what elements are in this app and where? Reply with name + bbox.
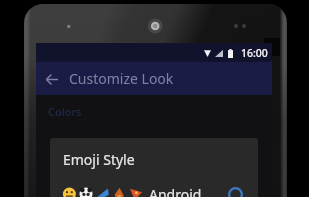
staticText: Android [149, 185, 202, 197]
staticText: Emoji Style [63, 150, 135, 169]
button[interactable]: Back [41, 68, 63, 90]
staticText: Customize Look [69, 69, 174, 88]
staticText: 16:00 [241, 46, 268, 60]
staticText: Colors [48, 104, 82, 119]
button[interactable]: Android [50, 183, 258, 197]
